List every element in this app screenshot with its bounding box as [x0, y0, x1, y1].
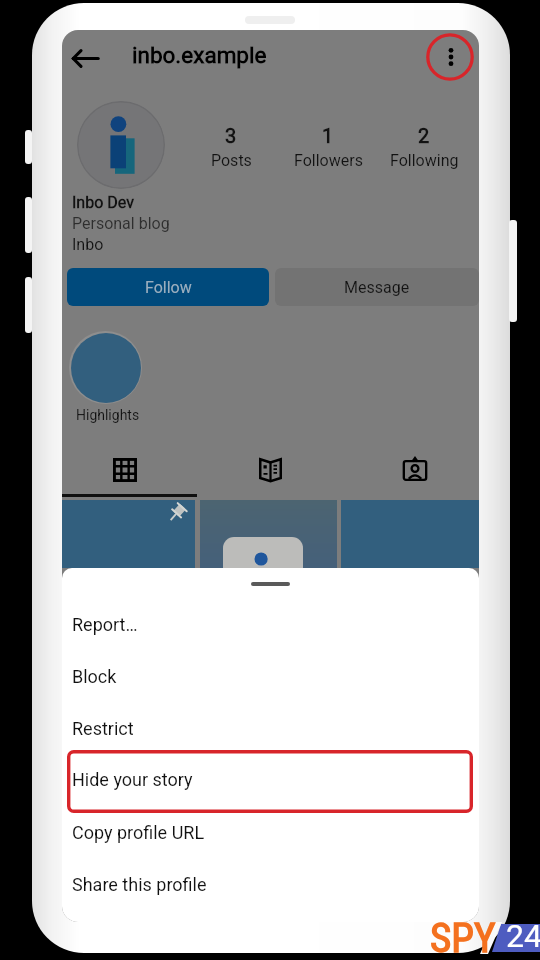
button[interactable]: Back	[70, 39, 108, 77]
staticText: Share this profile	[72, 874, 207, 895]
button[interactable]: Posts grid	[114, 459, 136, 481]
staticText: Inbo Dev	[72, 193, 134, 212]
staticText: 24	[506, 917, 540, 955]
button[interactable]: Profile photo	[77, 101, 165, 189]
staticText: Following	[390, 151, 459, 170]
button[interactable]: Block	[62, 650, 479, 702]
staticText: 1	[322, 124, 334, 147]
button[interactable]: Copy profile URL	[62, 806, 479, 858]
button[interactable]	[62, 500, 195, 568]
staticText: 2	[418, 124, 430, 147]
staticText: Report…	[72, 614, 138, 635]
staticText: Hide your story	[72, 769, 193, 790]
staticText: 3	[225, 124, 237, 147]
button[interactable]: Restrict	[62, 702, 479, 754]
staticText: inbo.example	[132, 42, 267, 68]
staticText: Restrict	[72, 718, 134, 739]
staticText: Follow	[145, 278, 192, 297]
button[interactable]: Follow	[67, 268, 269, 306]
button[interactable]: Tagged	[402, 457, 428, 481]
staticText: Message	[344, 278, 410, 297]
button[interactable]: Report…	[62, 598, 479, 650]
button[interactable]: More options	[424, 31, 476, 83]
button[interactable]	[200, 500, 337, 568]
staticText: Posts	[211, 151, 252, 170]
button[interactable]: Message	[275, 268, 479, 306]
staticText: Inbo	[72, 235, 104, 254]
button[interactable]: Hide your story	[67, 750, 473, 813]
button[interactable]: Guides	[258, 457, 283, 481]
button[interactable]	[69, 331, 142, 404]
staticText: Block	[72, 666, 117, 687]
button[interactable]: Share this profile	[62, 858, 479, 910]
staticText: Followers	[294, 151, 363, 170]
staticText: Copy profile URL	[72, 822, 205, 843]
staticText: SPY	[430, 914, 496, 958]
staticText: Highlights	[76, 407, 140, 423]
staticText: Personal blog	[72, 214, 170, 233]
